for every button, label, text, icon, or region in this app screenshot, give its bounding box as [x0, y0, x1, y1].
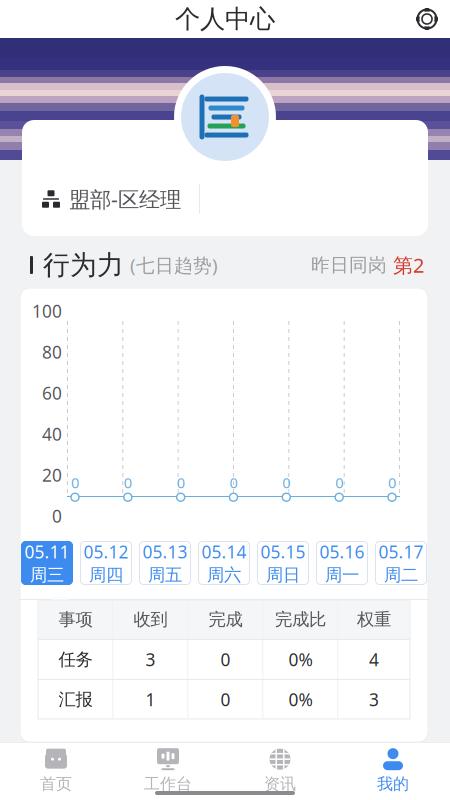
staticText: 80: [42, 340, 62, 363]
staticText: 0: [229, 473, 237, 492]
staticText: 周日: [266, 564, 300, 586]
staticText: 完成: [208, 609, 242, 630]
button[interactable]: 05.12: [80, 541, 131, 584]
staticText: 收到: [133, 609, 167, 630]
staticText: 我的: [377, 774, 409, 794]
staticText: 05.14: [201, 540, 246, 563]
staticText: 权重: [357, 609, 391, 630]
staticText: 行为力: [43, 249, 124, 281]
staticText: 3: [369, 688, 379, 711]
staticText: 05.16: [319, 540, 364, 563]
staticText: 资讯: [264, 774, 296, 794]
staticText: 0: [220, 688, 230, 711]
staticText: 盟部-区经理: [69, 185, 181, 213]
button[interactable]: 05.13: [139, 541, 190, 584]
staticText: 0: [124, 473, 132, 492]
staticText: 周二: [384, 564, 418, 586]
staticText: 事项: [58, 609, 92, 630]
button[interactable]: 首页: [0, 744, 112, 798]
staticText: (七日趋势): [130, 253, 218, 277]
staticText: 汇报: [58, 689, 92, 710]
staticText: 40: [42, 422, 62, 445]
button[interactable]: 05.14: [198, 541, 249, 584]
staticText: 周一: [325, 564, 359, 586]
staticText: 周四: [89, 564, 123, 586]
button[interactable]: 05.17: [375, 541, 426, 584]
staticText: 昨日同岗: [311, 253, 387, 276]
staticText: 0%: [288, 648, 312, 671]
staticText: 20: [42, 463, 62, 486]
button[interactable]: 05.15: [257, 541, 308, 584]
staticText: 1: [145, 688, 155, 711]
staticText: 05.11: [24, 540, 69, 563]
staticText: 0: [282, 473, 290, 492]
staticText: 0%: [288, 688, 312, 711]
button[interactable]: 我的: [336, 744, 450, 798]
button[interactable]: 05.11: [21, 541, 72, 584]
staticText: 周五: [148, 564, 182, 586]
staticText: 0: [71, 473, 79, 492]
staticText: 任务: [58, 649, 92, 670]
staticText: 0: [220, 648, 230, 671]
staticText: 0: [335, 473, 343, 492]
staticText: 周六: [207, 564, 241, 586]
staticText: 完成比: [275, 609, 326, 630]
staticText: 05.17: [378, 540, 423, 563]
staticText: 周三: [30, 564, 64, 586]
staticText: 05.15: [260, 540, 305, 563]
staticText: 3: [145, 648, 155, 671]
staticText: 首页: [40, 774, 72, 794]
button[interactable]: Settings: [404, 0, 450, 38]
staticText: 100: [32, 299, 62, 322]
staticText: 工作台: [144, 774, 192, 794]
staticText: 05.12: [83, 540, 128, 563]
staticText: 60: [42, 381, 62, 404]
button[interactable]: 05.16: [316, 541, 367, 584]
button[interactable]: 工作台: [112, 744, 224, 798]
staticText: 0: [177, 473, 185, 492]
staticText: 4: [369, 648, 379, 671]
staticText: 0: [388, 473, 396, 492]
staticText: 个人中心: [175, 3, 275, 34]
staticText: 0: [52, 504, 62, 527]
staticText: 05.13: [142, 540, 187, 563]
staticText: 第2: [393, 252, 424, 278]
button[interactable]: 资讯: [224, 744, 336, 798]
